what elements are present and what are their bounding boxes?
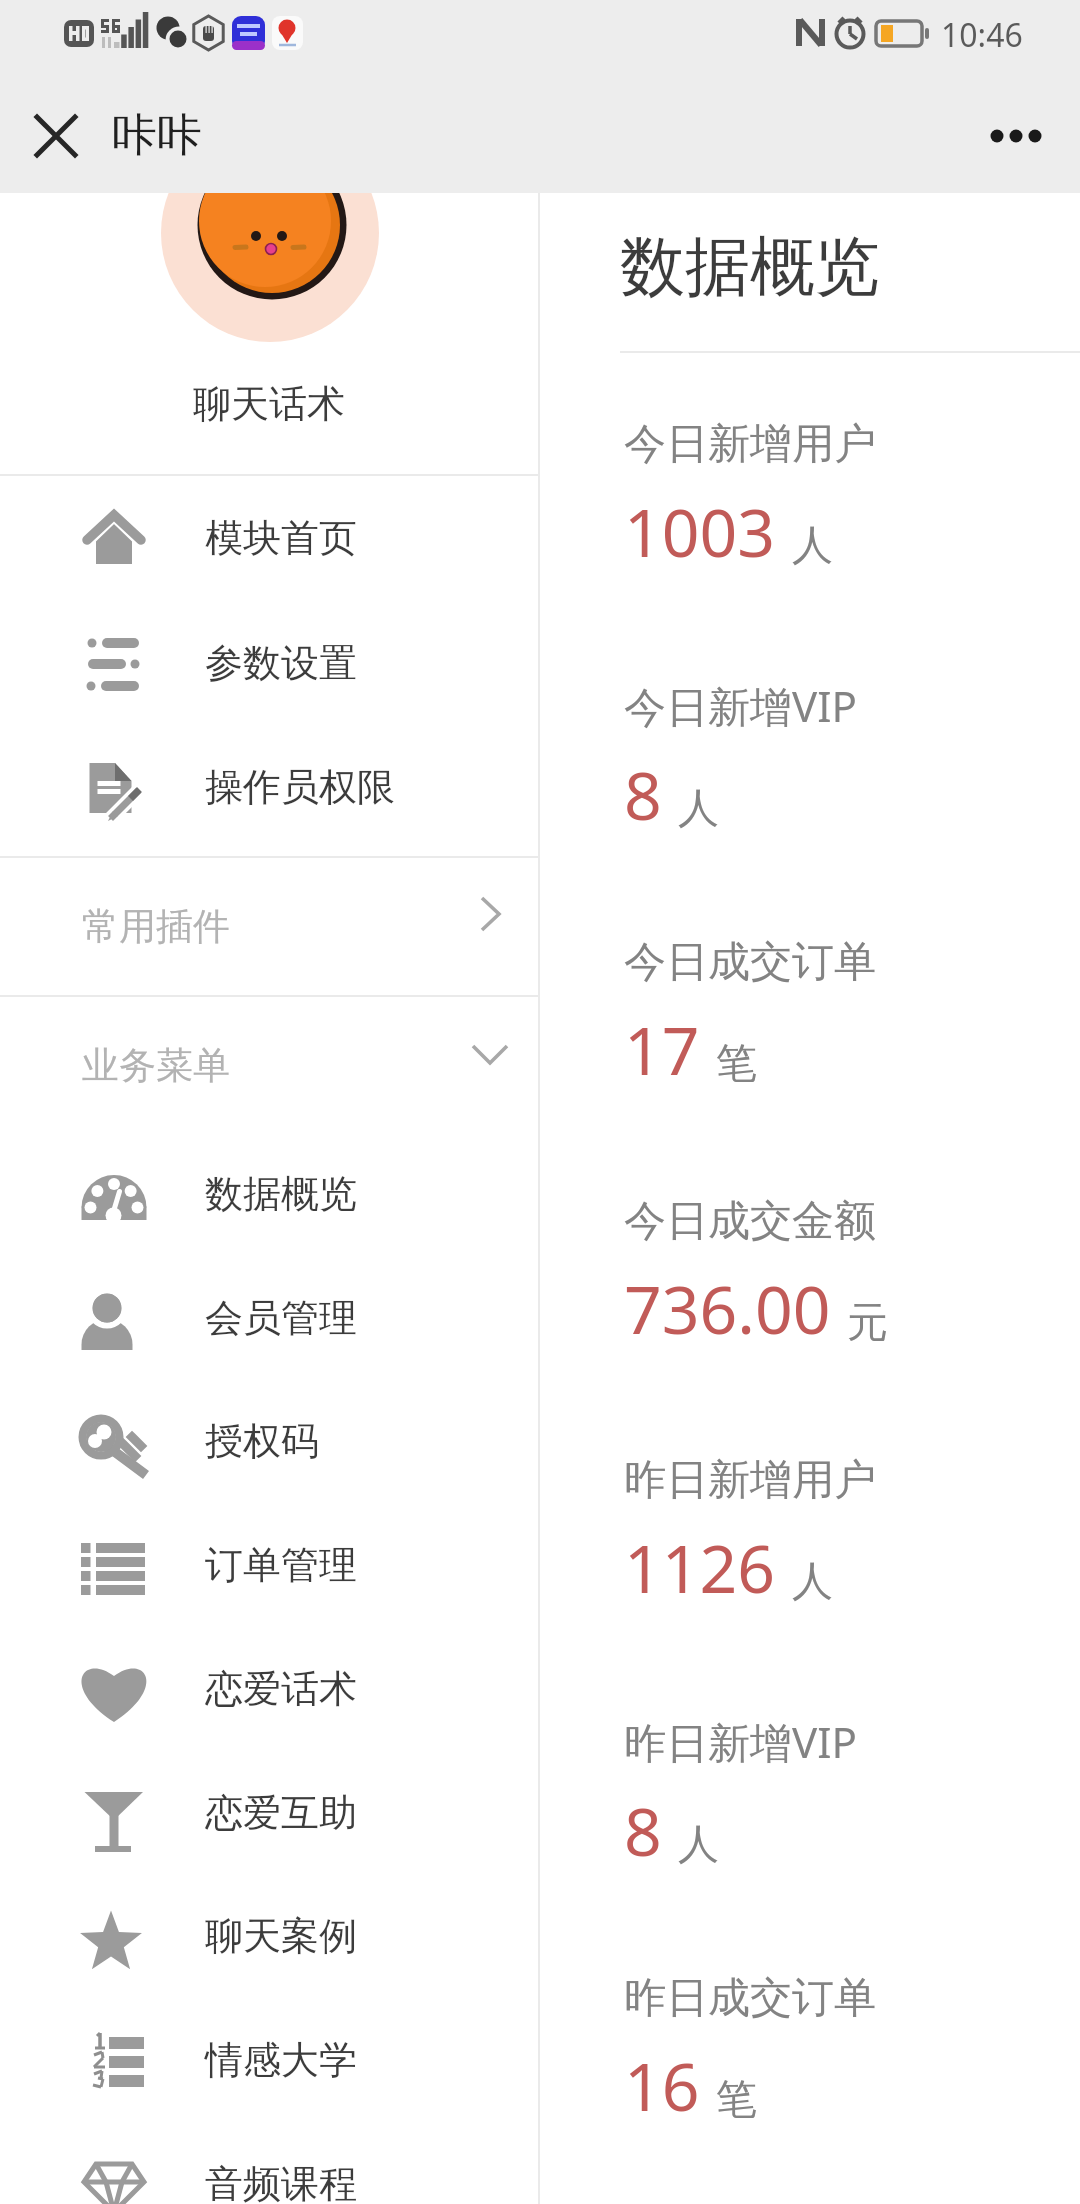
button[interactable]: 聊天案例 (0, 1874, 538, 1998)
staticText: 8 (624, 749, 662, 839)
staticText: 16 (624, 2040, 700, 2130)
staticText: 恋爱话术 (205, 1665, 357, 1713)
button[interactable]: 今日成交金额 (624, 1195, 1080, 1454)
staticText: 人 (678, 1819, 719, 1871)
staticText: 数据概览 (205, 1170, 357, 1218)
staticText: 736.00 (624, 1263, 831, 1353)
staticText: 人 (792, 1556, 833, 1608)
staticText: 今日新增用户 (624, 418, 876, 471)
button[interactable]: 恋爱话术 (0, 1627, 538, 1751)
staticText: 笔 (716, 2074, 757, 2126)
button[interactable]: 昨日成交订单 (624, 1972, 1080, 2204)
button[interactable]: 音频课程 (0, 2122, 538, 2204)
staticText: 1003 (624, 486, 776, 576)
staticText: 昨日新增用户 (624, 1454, 876, 1507)
staticText: 人 (678, 783, 719, 835)
button[interactable]: 今日新增VIP (624, 677, 1080, 936)
staticText: 今日成交订单 (624, 936, 876, 989)
staticText: 业务菜单 (82, 1042, 230, 1089)
staticText: 8 (624, 1785, 662, 1875)
staticText: 笔 (716, 1038, 757, 1090)
button[interactable]: 授权码 (0, 1379, 538, 1503)
button[interactable]: 参数设置 (0, 601, 538, 725)
button[interactable]: 订单管理 (0, 1503, 538, 1627)
button[interactable]: 常用插件 (0, 858, 538, 995)
button[interactable]: 聊天话术 (0, 193, 538, 474)
staticText: 聊天案例 (205, 1912, 357, 1960)
staticText: 昨日新增VIP (624, 1713, 857, 1770)
button[interactable]: Close (20, 100, 92, 172)
staticText: 数据概览 (620, 226, 880, 308)
staticText: 咔咔 (112, 107, 202, 164)
staticText: 17 (624, 1004, 700, 1094)
staticText: 操作员权限 (205, 763, 395, 811)
staticText: 授权码 (205, 1417, 319, 1465)
staticText: 音频课程 (205, 2160, 357, 2204)
button[interactable]: 情感大学 (0, 1998, 538, 2122)
button[interactable]: 数据概览 (0, 1132, 538, 1256)
staticText: 元 (847, 1297, 888, 1349)
button[interactable]: 昨日新增用户 (624, 1454, 1080, 1713)
button[interactable]: 昨日新增VIP (624, 1713, 1080, 1972)
staticText: 订单管理 (205, 1541, 357, 1589)
button[interactable]: 业务菜单 (0, 997, 538, 1134)
staticText: 昨日成交订单 (624, 1972, 876, 2025)
button[interactable]: 模块首页 (0, 476, 538, 600)
staticText: 人 (792, 520, 833, 572)
staticText: 1126 (624, 1522, 776, 1612)
button[interactable]: More options (980, 100, 1052, 172)
button[interactable]: 今日成交订单 (624, 936, 1080, 1195)
staticText: 会员管理 (205, 1294, 357, 1342)
button[interactable]: 今日新增用户 (624, 418, 1080, 677)
staticText: 今日新增VIP (624, 677, 857, 734)
staticText: 情感大学 (205, 2036, 357, 2084)
staticText: 恋爱互助 (205, 1789, 357, 1837)
staticText: 常用插件 (82, 903, 230, 950)
button[interactable]: 恋爱互助 (0, 1751, 538, 1875)
staticText: 模块首页 (205, 514, 357, 562)
staticText: 10:46 (941, 13, 1023, 57)
staticText: 聊天话术 (193, 380, 345, 428)
staticText: 今日成交金额 (624, 1195, 876, 1248)
button[interactable]: 会员管理 (0, 1256, 538, 1380)
button[interactable]: 操作员权限 (0, 725, 538, 849)
staticText: 参数设置 (205, 639, 357, 687)
